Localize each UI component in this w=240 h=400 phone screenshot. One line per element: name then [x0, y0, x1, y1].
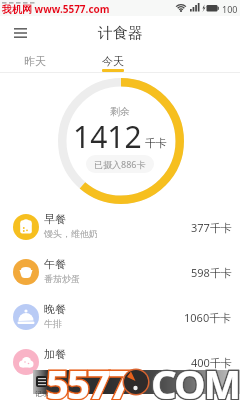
button[interactable]: 早餐	[0, 205, 240, 250]
staticText: 晚餐	[44, 302, 66, 316]
button[interactable]: 晚餐	[0, 295, 240, 340]
staticText: 我机网 www.5577.com	[2, 2, 110, 16]
staticText: 1412	[73, 116, 142, 157]
staticText: 5577	[46, 356, 130, 400]
staticText: 千卡	[145, 136, 167, 150]
staticText: 牛排	[44, 318, 62, 329]
staticText: 598千卡	[191, 265, 232, 280]
button[interactable]: 昨天	[15, 52, 55, 70]
staticText: COM	[151, 356, 240, 400]
staticText: 400千卡	[191, 355, 232, 370]
staticText: 番茄炒蛋	[44, 273, 80, 284]
staticText: 加餐	[44, 347, 66, 361]
staticText: COM	[151, 356, 240, 400]
button[interactable]: 今天	[93, 52, 133, 70]
staticText: 1060千卡	[184, 310, 232, 325]
staticText: 计食器	[98, 24, 143, 43]
staticText: 377千卡	[191, 220, 232, 235]
staticText: 馒头，维他奶	[44, 228, 98, 239]
staticText: 今天	[102, 54, 124, 68]
staticText: 已摄入886卡	[94, 158, 146, 170]
staticText: 剩余	[110, 105, 130, 118]
staticText: 昨天	[24, 54, 46, 68]
staticText: 100	[222, 3, 238, 15]
staticText: 早餐	[44, 212, 66, 226]
staticText: 午餐	[44, 257, 66, 271]
button[interactable]: 加餐	[0, 340, 240, 385]
staticText: 5577	[46, 356, 130, 400]
staticText: 记录	[35, 389, 49, 398]
button[interactable]: 午餐	[0, 250, 240, 295]
